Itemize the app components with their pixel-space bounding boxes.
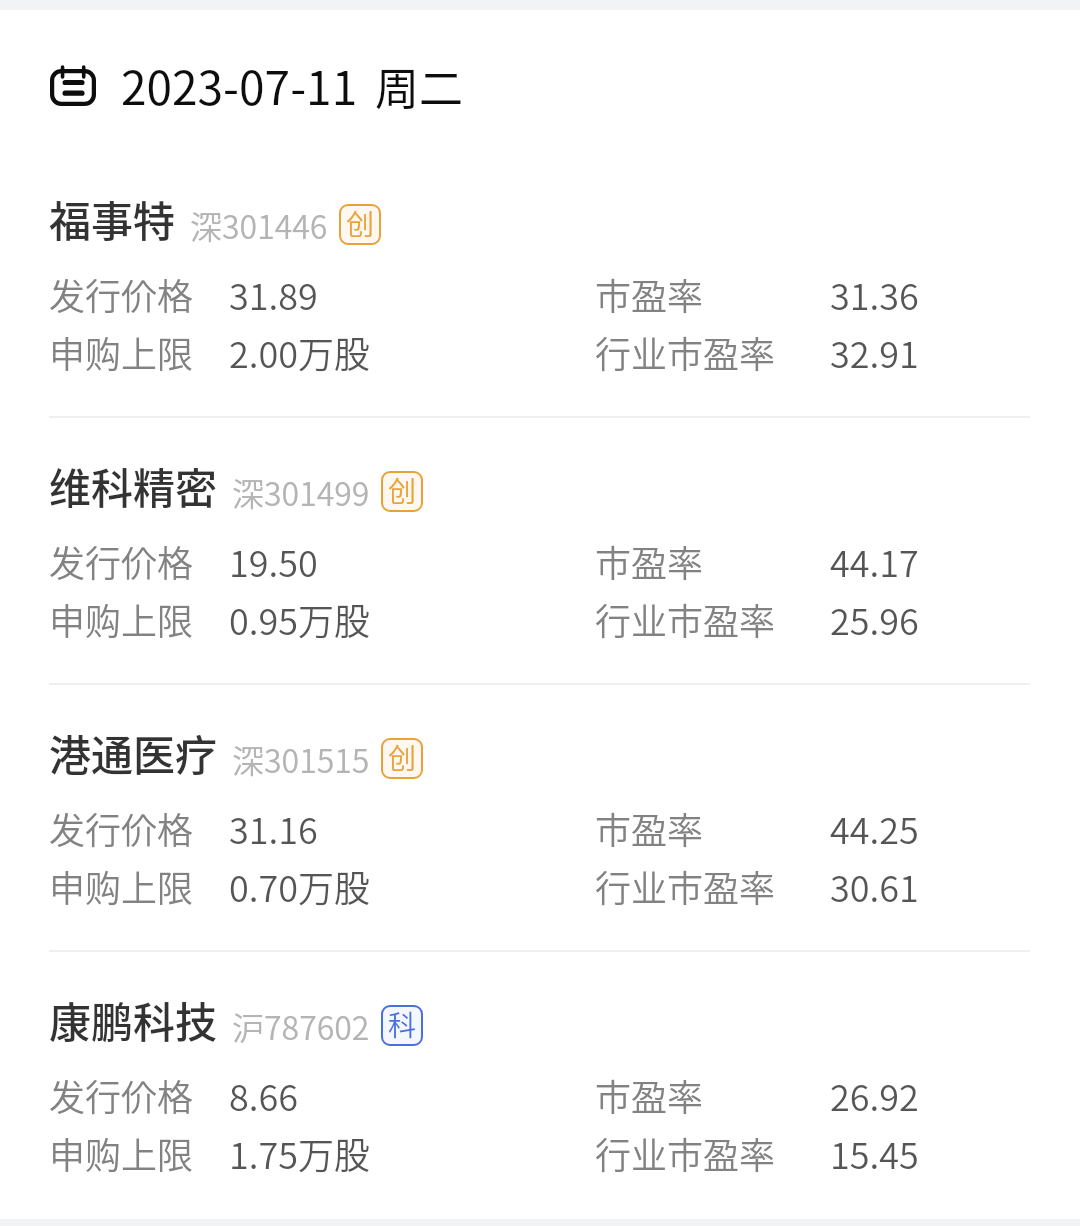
staticText: 19.50 bbox=[229, 535, 318, 587]
staticText: 2.00万股 bbox=[229, 326, 370, 378]
staticText: 0.70万股 bbox=[229, 860, 370, 912]
staticText: 申购上限 bbox=[49, 1127, 194, 1179]
staticText: 44.17 bbox=[830, 535, 919, 587]
staticText: 31.36 bbox=[830, 268, 919, 320]
staticText: 31.16 bbox=[229, 802, 318, 854]
button[interactable]: 康鹏科技 bbox=[0, 952, 1080, 1218]
button[interactable]: 维科精密 bbox=[0, 418, 1080, 684]
staticText: 发行价格 bbox=[49, 802, 194, 854]
staticText: 深301515 bbox=[232, 736, 370, 782]
staticText: 发行价格 bbox=[49, 535, 194, 587]
staticText: 行业市盈率 bbox=[595, 860, 776, 912]
staticText: 申购上限 bbox=[49, 593, 194, 645]
staticText: 创 bbox=[388, 470, 417, 511]
button[interactable]: 福事特 bbox=[0, 151, 1080, 417]
staticText: 市盈率 bbox=[595, 535, 704, 587]
staticText: 行业市盈率 bbox=[595, 593, 776, 645]
staticText: 26.92 bbox=[830, 1069, 919, 1121]
staticText: 深301499 bbox=[232, 469, 370, 515]
staticText: 行业市盈率 bbox=[595, 1127, 776, 1179]
staticText: 创 bbox=[346, 203, 375, 244]
button[interactable]: 港通医疗 bbox=[0, 685, 1080, 951]
staticText: 15.45 bbox=[830, 1127, 919, 1179]
staticText: 31.89 bbox=[229, 268, 318, 320]
staticText: 30.61 bbox=[830, 860, 919, 912]
staticText: 行业市盈率 bbox=[595, 326, 776, 378]
staticText: 市盈率 bbox=[595, 268, 704, 320]
staticText: 科 bbox=[388, 1004, 417, 1045]
staticText: 深301446 bbox=[190, 202, 328, 248]
staticText: 福事特 bbox=[49, 188, 176, 249]
staticText: 发行价格 bbox=[49, 268, 194, 320]
staticText: 2023-07-11 bbox=[121, 52, 358, 119]
staticText: 维科精密 bbox=[49, 455, 218, 516]
staticText: 0.95万股 bbox=[229, 593, 370, 645]
staticText: 周二 bbox=[375, 54, 463, 118]
staticText: 8.66 bbox=[229, 1069, 298, 1121]
staticText: 港通医疗 bbox=[49, 722, 218, 783]
staticText: 25.96 bbox=[830, 593, 919, 645]
staticText: 申购上限 bbox=[49, 326, 194, 378]
staticText: 44.25 bbox=[830, 802, 919, 854]
staticText: 32.91 bbox=[830, 326, 919, 378]
staticText: 沪787602 bbox=[232, 1003, 370, 1049]
staticText: 申购上限 bbox=[49, 860, 194, 912]
button[interactable]: Pick date, 2023-07-11 Tuesday bbox=[40, 46, 480, 124]
staticText: 康鹏科技 bbox=[49, 989, 218, 1050]
staticText: 市盈率 bbox=[595, 802, 704, 854]
staticText: 1.75万股 bbox=[229, 1127, 370, 1179]
staticText: 市盈率 bbox=[595, 1069, 704, 1121]
staticText: 发行价格 bbox=[49, 1069, 194, 1121]
staticText: 创 bbox=[388, 737, 417, 778]
